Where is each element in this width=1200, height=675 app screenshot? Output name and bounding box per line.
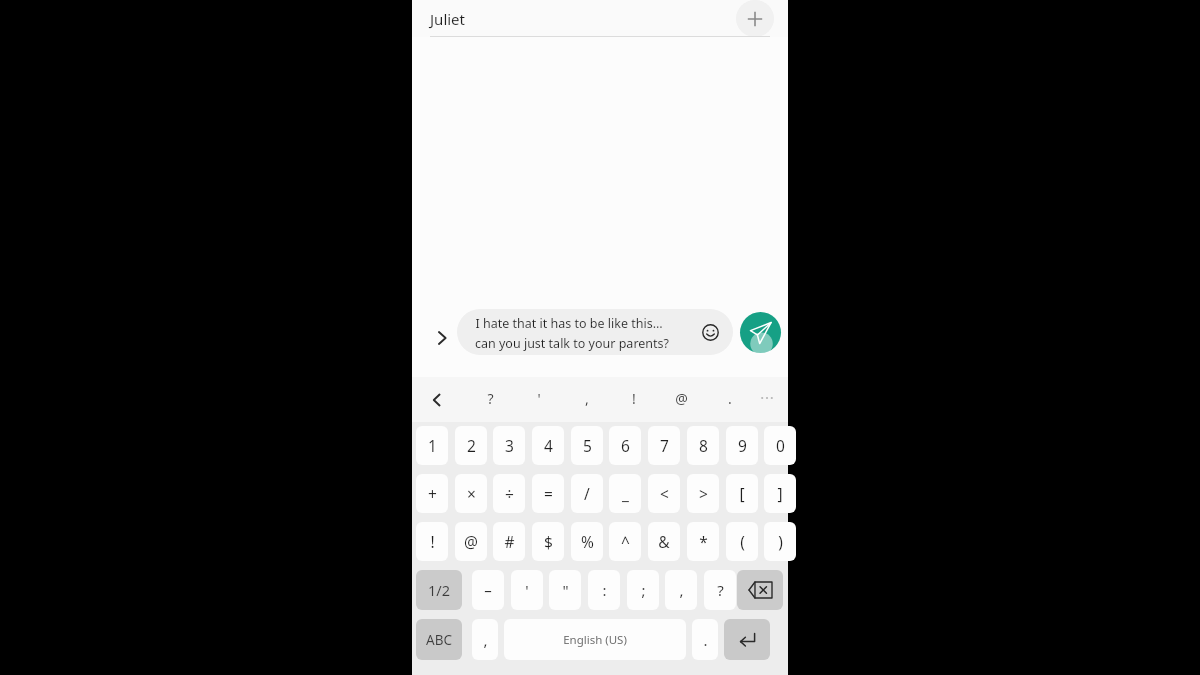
button[interactable]: ? <box>704 570 736 610</box>
button[interactable]: > <box>687 474 719 513</box>
button[interactable]: ' <box>511 570 543 610</box>
button[interactable]: * <box>687 522 719 561</box>
staticText: @ <box>464 531 478 552</box>
button[interactable]: % <box>571 522 603 561</box>
staticText: % <box>581 531 594 552</box>
staticText: 4 <box>544 435 553 456</box>
staticText: ? <box>717 580 724 600</box>
button[interactable]: ; <box>627 570 659 610</box>
button[interactable]: 1 <box>416 426 448 465</box>
staticText: ÷ <box>505 483 514 504</box>
staticText: ; <box>641 580 646 600</box>
button[interactable]: I hate that it has to be like this… <box>457 309 733 355</box>
button[interactable]: Expand <box>425 321 459 355</box>
staticText: $ <box>544 531 553 552</box>
staticText: 1 <box>428 435 437 456</box>
button[interactable]: [ <box>726 474 758 513</box>
staticText: & <box>658 531 670 552</box>
button[interactable]: ' <box>522 381 556 415</box>
button[interactable]: + <box>416 474 448 513</box>
button[interactable]: . <box>692 619 718 660</box>
staticText: : <box>602 580 607 600</box>
button[interactable]: 2 <box>455 426 487 465</box>
button[interactable]: ? <box>473 381 507 415</box>
button[interactable]: Enter <box>724 619 770 660</box>
button[interactable]: ^ <box>609 522 641 561</box>
staticText: @ <box>675 389 688 408</box>
button[interactable]: & <box>648 522 680 561</box>
button[interactable]: : <box>588 570 620 610</box>
staticText: ! <box>430 531 435 552</box>
button[interactable]: < <box>648 474 680 513</box>
button[interactable]: # <box>493 522 525 561</box>
staticText: ] <box>777 483 783 504</box>
staticText: = <box>544 483 553 504</box>
staticText: * <box>699 531 708 552</box>
staticText: English (US) <box>563 632 627 648</box>
button[interactable]: Previous <box>420 383 453 416</box>
staticText: ! <box>632 389 636 408</box>
staticText: . <box>728 389 732 408</box>
staticText: , <box>585 389 589 408</box>
button[interactable]: 0 <box>764 426 796 465</box>
button[interactable]: 3 <box>493 426 525 465</box>
staticText: 7 <box>660 435 669 456</box>
staticText: can you just talk to your parents? <box>475 335 669 352</box>
button[interactable]: × <box>455 474 487 513</box>
button[interactable]: English (US) <box>504 619 686 660</box>
staticText: + <box>428 483 437 504</box>
staticText: . <box>703 630 708 650</box>
button[interactable]: 6 <box>609 426 641 465</box>
staticText: 5 <box>583 435 592 456</box>
button[interactable]: 5 <box>571 426 603 465</box>
button[interactable]: 8 <box>687 426 719 465</box>
button[interactable]: Emoji <box>695 317 725 347</box>
staticText: # <box>504 531 515 552</box>
staticText: , <box>483 630 488 650</box>
button[interactable]: ) <box>764 522 796 561</box>
button[interactable]: – <box>472 570 504 610</box>
button[interactable]: ! <box>617 381 651 415</box>
staticText: 3 <box>505 435 514 456</box>
button[interactable]: More <box>752 383 782 413</box>
button[interactable]: ABC <box>416 619 462 660</box>
staticText: 8 <box>699 435 708 456</box>
button[interactable]: $ <box>532 522 564 561</box>
button[interactable]: Send <box>740 312 781 353</box>
button[interactable]: 7 <box>648 426 680 465</box>
button[interactable]: 1/2 <box>416 570 462 610</box>
button[interactable]: @ <box>455 522 487 561</box>
staticText: Juliet <box>430 9 465 29</box>
button[interactable]: @ <box>664 381 698 415</box>
staticText: , <box>679 580 684 600</box>
staticText: < <box>660 483 669 504</box>
staticText: ? <box>487 389 494 408</box>
staticText: > <box>699 483 708 504</box>
staticText: ABC <box>426 631 452 649</box>
staticText: ' <box>525 580 529 600</box>
button[interactable]: ÷ <box>493 474 525 513</box>
staticText: ^ <box>621 531 630 552</box>
staticText: ' <box>537 389 541 408</box>
button[interactable]: Add <box>736 0 774 37</box>
staticText: ( <box>740 531 745 552</box>
button[interactable]: , <box>570 381 604 415</box>
button[interactable]: ! <box>416 522 448 561</box>
staticText: ) <box>778 531 783 552</box>
button[interactable]: " <box>549 570 581 610</box>
button[interactable]: 9 <box>726 426 758 465</box>
button[interactable]: . <box>713 381 747 415</box>
button[interactable]: ] <box>764 474 796 513</box>
button[interactable]: / <box>571 474 603 513</box>
button[interactable]: _ <box>609 474 641 513</box>
button[interactable]: ( <box>726 522 758 561</box>
staticText: 2 <box>467 435 476 456</box>
button[interactable]: Backspace <box>737 570 783 610</box>
button[interactable]: , <box>472 619 498 660</box>
staticText: / <box>584 483 590 504</box>
button[interactable]: , <box>665 570 697 610</box>
staticText: I hate that it has to be like this… <box>475 315 663 332</box>
button[interactable]: 4 <box>532 426 564 465</box>
staticText: × <box>467 483 476 504</box>
button[interactable]: = <box>532 474 564 513</box>
